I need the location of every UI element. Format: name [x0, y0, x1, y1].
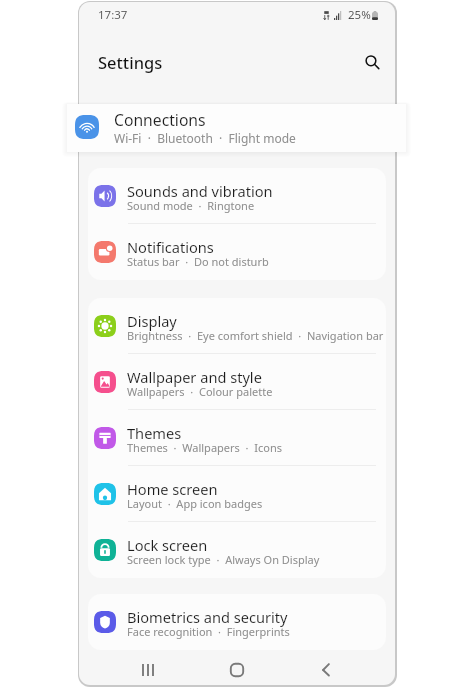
- staticText: Sounds and vibration: [127, 181, 273, 201]
- staticText: 17:37: [98, 7, 128, 23]
- staticText: Layout · App icon badges: [127, 496, 263, 511]
- staticText: 25%: [348, 7, 371, 23]
- button[interactable]: Home screen: [88, 466, 386, 522]
- button[interactable]: Display: [88, 298, 386, 354]
- button[interactable]: Recent apps: [126, 648, 170, 685]
- staticText: Wallpapers · Colour palette: [127, 384, 273, 399]
- button[interactable]: Back: [304, 648, 348, 685]
- staticText: Biometrics and security: [127, 607, 288, 627]
- staticText: Home screen: [127, 479, 218, 499]
- staticText: Status bar · Do not disturb: [127, 254, 269, 269]
- staticText: Themes: [127, 423, 182, 443]
- staticText: Wallpaper and style: [127, 367, 262, 387]
- staticText: Settings: [98, 51, 163, 73]
- button[interactable]: Lock screen: [88, 522, 386, 578]
- staticText: Brightness · Eye comfort shield · Naviga…: [127, 328, 384, 343]
- button[interactable]: Search: [355, 45, 389, 79]
- button[interactable]: Notifications: [88, 224, 386, 280]
- button[interactable]: Home: [215, 648, 259, 685]
- staticText: Notifications: [127, 237, 214, 257]
- button[interactable]: Sounds and vibration: [88, 168, 386, 224]
- staticText: Sound mode · Ringtone: [127, 198, 255, 213]
- button[interactable]: Themes: [88, 410, 386, 466]
- button[interactable]: Wallpaper and style: [88, 354, 386, 410]
- staticText: Themes · Wallpapers · Icons: [127, 440, 282, 455]
- staticText: Wi-Fi · Bluetooth · Flight mode: [114, 130, 296, 146]
- staticText: Face recognition · Fingerprints: [127, 624, 290, 639]
- button[interactable]: Connections: [67, 104, 406, 152]
- staticText: Connections: [114, 109, 206, 130]
- button[interactable]: Biometrics and security: [88, 594, 386, 650]
- staticText: Display: [127, 311, 177, 331]
- staticText: Screen lock type · Always On Display: [127, 552, 320, 567]
- staticText: Lock screen: [127, 535, 208, 555]
